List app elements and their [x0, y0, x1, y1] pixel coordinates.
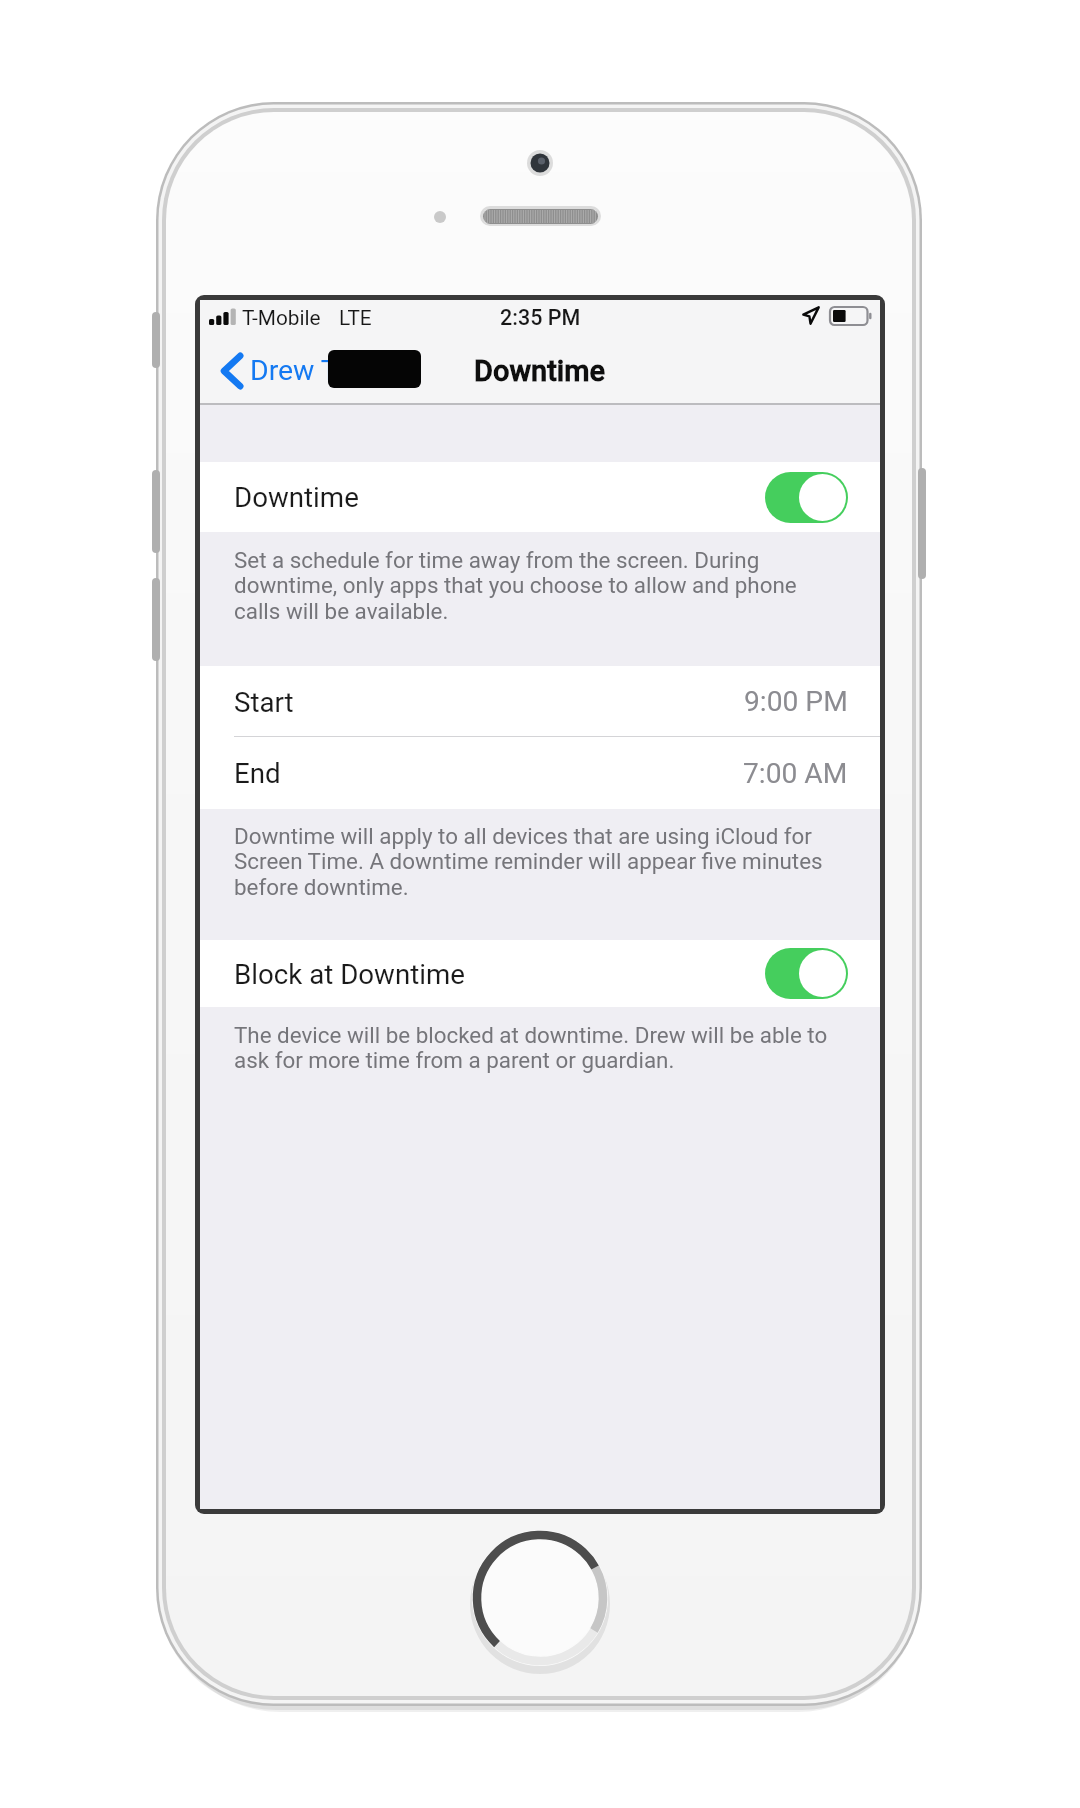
staticText: Block at Downtime [234, 958, 465, 990]
button[interactable]: End [200, 737, 880, 809]
button[interactable]: Downtime [200, 462, 880, 532]
button[interactable]: Toggle on [765, 472, 848, 523]
staticText: Set a schedule for time away from the sc… [234, 547, 836, 625]
button[interactable]: Start [200, 666, 880, 737]
staticText: Downtime [474, 354, 606, 388]
button[interactable]: Block at Downtime [200, 940, 880, 1007]
staticText: End [234, 757, 281, 789]
staticText: Downtime will apply to all devices that … [234, 823, 836, 901]
staticText: The device will be blocked at downtime. … [234, 1022, 836, 1074]
staticText: 2:35 PM [500, 305, 581, 330]
other: Battery [830, 307, 872, 325]
staticText: T-Mobile [242, 306, 321, 330]
staticText: 7:00 AM [743, 757, 848, 790]
button[interactable]: Back [200, 340, 348, 401]
button[interactable]: Toggle on [765, 948, 848, 999]
staticText: Downtime [234, 481, 359, 513]
staticText: 9:00 PM [744, 685, 848, 718]
staticText: Start [234, 686, 294, 718]
staticText: Drew T [250, 354, 338, 387]
other: Back [221, 354, 242, 388]
staticText: LTE [339, 306, 372, 330]
other: Location in use [803, 307, 819, 324]
